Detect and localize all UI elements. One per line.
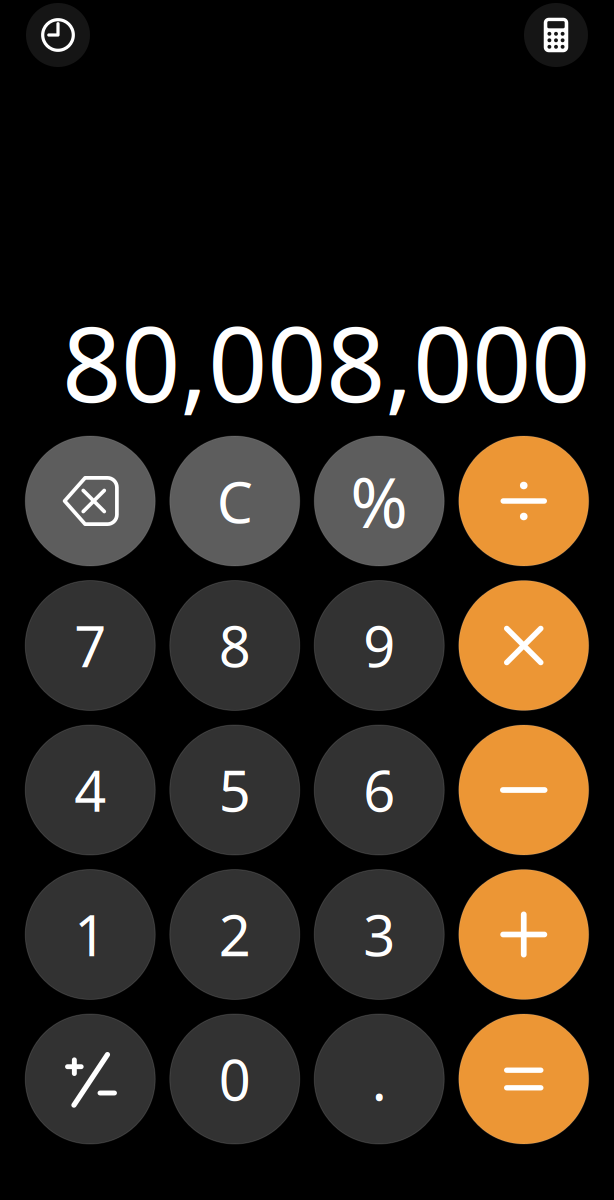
staticText: 6: [363, 753, 395, 827]
button[interactable]: 0: [170, 1014, 300, 1144]
button[interactable]: Equals: [459, 1014, 589, 1144]
button[interactable]: 1: [25, 869, 155, 999]
button[interactable]: History: [26, 3, 90, 67]
button[interactable]: Subtract: [459, 725, 589, 855]
button[interactable]: Multiply: [459, 580, 589, 710]
staticText: %: [350, 455, 408, 547]
button[interactable]: Delete: [25, 436, 155, 566]
button[interactable]: %: [314, 436, 444, 566]
staticText: 9: [363, 608, 395, 683]
staticText: .: [372, 1042, 387, 1116]
staticText: 8: [219, 608, 251, 683]
button[interactable]: 3: [314, 869, 444, 999]
button[interactable]: Plus minus: [25, 1014, 155, 1144]
button[interactable]: C: [170, 436, 300, 566]
staticText: 80,008,000: [62, 293, 590, 431]
staticText: 7: [74, 608, 106, 683]
button[interactable]: Calculator: [524, 3, 588, 67]
staticText: 1: [74, 897, 106, 972]
staticText: C: [217, 463, 253, 539]
button[interactable]: 4: [25, 725, 155, 855]
staticText: 0: [219, 1042, 251, 1116]
button[interactable]: Add: [459, 869, 589, 999]
staticText: 5: [219, 753, 251, 827]
button[interactable]: 2: [170, 869, 300, 999]
button[interactable]: 7: [25, 580, 155, 710]
button[interactable]: 9: [314, 580, 444, 710]
staticText: 4: [74, 753, 106, 827]
button[interactable]: Divide: [459, 436, 589, 566]
staticText: 2: [219, 897, 251, 972]
button[interactable]: 6: [314, 725, 444, 855]
staticText: 3: [363, 897, 395, 972]
button[interactable]: 5: [170, 725, 300, 855]
button[interactable]: 8: [170, 580, 300, 710]
button[interactable]: .: [314, 1014, 444, 1144]
